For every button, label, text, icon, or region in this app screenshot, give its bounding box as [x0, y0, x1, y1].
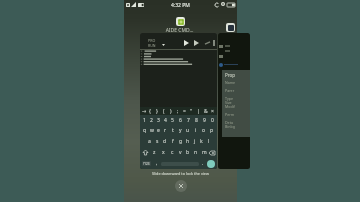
staticText: 2	[150, 117, 153, 124]
staticText: ×	[211, 108, 214, 115]
button[interactable]: q	[141, 125, 148, 136]
staticText: ;	[177, 108, 179, 115]
button[interactable]: Enter	[207, 160, 215, 168]
button[interactable]: Share	[205, 41, 210, 45]
button[interactable]: 5	[169, 115, 176, 125]
button[interactable]: 2	[148, 115, 155, 125]
button[interactable]: n	[192, 147, 200, 158]
button[interactable]: d	[161, 136, 169, 147]
button[interactable]: Close recents	[175, 180, 187, 192]
staticText: Perm	[225, 112, 235, 117]
button[interactable]: Run	[184, 40, 189, 46]
staticText: Binbg	[225, 124, 235, 129]
button[interactable]: PRO	[140, 33, 217, 169]
staticText: x	[162, 149, 165, 156]
staticText: )	[170, 108, 172, 115]
button[interactable]: &	[202, 107, 209, 115]
button[interactable]: Debug	[194, 40, 199, 46]
button[interactable]: y	[176, 125, 184, 136]
button[interactable]: r	[162, 125, 169, 136]
button[interactable]: 1	[141, 115, 148, 125]
button[interactable]: ×	[209, 107, 216, 115]
button[interactable]: {	[147, 107, 153, 115]
button[interactable]: h	[184, 136, 191, 147]
button[interactable]: 7	[184, 115, 192, 125]
button[interactable]: x	[159, 147, 168, 158]
button[interactable]: t	[169, 125, 176, 136]
button[interactable]: )	[167, 107, 174, 115]
staticText: Parer	[225, 88, 235, 93]
button[interactable]: →	[141, 107, 147, 115]
button[interactable]: 6	[176, 115, 184, 125]
staticText: e	[157, 127, 160, 134]
staticText: AIDE CMD…	[141, 27, 218, 34]
staticText: g	[179, 138, 183, 145]
button[interactable]: =	[181, 107, 188, 115]
staticText: Deta	[225, 120, 233, 125]
staticText: f	[172, 138, 174, 145]
button[interactable]: c	[168, 147, 176, 158]
staticText: o	[202, 127, 206, 134]
button[interactable]: Backspace	[208, 147, 216, 158]
button[interactable]: g	[177, 136, 184, 147]
button[interactable]: l	[205, 136, 212, 147]
button[interactable]: i	[192, 125, 200, 136]
staticText: s	[156, 138, 159, 145]
button[interactable]: k	[198, 136, 205, 147]
button[interactable]: Prop	[218, 33, 250, 169]
staticText: n	[194, 149, 198, 156]
staticText: |	[197, 108, 200, 115]
staticText: (	[163, 108, 165, 115]
button[interactable]: s	[153, 136, 161, 147]
button[interactable]: b	[184, 147, 192, 158]
staticText: Type	[225, 96, 233, 101]
button[interactable]: }	[153, 107, 160, 115]
button[interactable]: a	[145, 136, 153, 147]
staticText: h	[186, 138, 190, 145]
button[interactable]: 0	[208, 115, 216, 125]
staticText: c	[171, 149, 174, 156]
button[interactable]: |	[195, 107, 202, 115]
button[interactable]: Shift	[141, 147, 150, 158]
button[interactable]: ?123	[142, 161, 151, 166]
staticText: ,	[156, 160, 158, 167]
button[interactable]: (	[160, 107, 167, 115]
button[interactable]: 8	[192, 115, 200, 125]
staticText: data	[148, 48, 153, 51]
staticText: 0	[211, 117, 214, 124]
staticText: =	[183, 108, 186, 115]
staticText: RUN	[148, 43, 156, 48]
staticText: Prop	[225, 72, 235, 78]
button[interactable]: ;	[174, 107, 181, 115]
button[interactable]: u	[184, 125, 192, 136]
button[interactable]: f	[169, 136, 177, 147]
staticText: m	[202, 149, 207, 156]
staticText: l	[208, 138, 210, 145]
button[interactable]: z	[150, 147, 159, 158]
staticText: Name	[225, 80, 236, 85]
staticText: .	[202, 160, 204, 167]
button[interactable]: e	[155, 125, 162, 136]
staticText: 3	[157, 117, 160, 124]
staticText: Slide downward to lock the view	[152, 171, 209, 176]
button[interactable]: 4	[162, 115, 169, 125]
staticText: j	[194, 138, 196, 145]
staticText: 6	[179, 117, 182, 124]
button[interactable]: v	[176, 147, 184, 158]
button[interactable]: 9	[200, 115, 208, 125]
staticText: 8	[195, 117, 198, 124]
button[interactable]: w	[148, 125, 155, 136]
button[interactable]: m	[200, 147, 208, 158]
staticText: y	[179, 127, 182, 134]
staticText: PRO	[148, 38, 156, 43]
staticText: k	[200, 138, 203, 145]
button[interactable]: o	[200, 125, 208, 136]
staticText: w	[150, 127, 154, 134]
button[interactable]: "	[188, 107, 195, 115]
button[interactable]: 3	[155, 115, 162, 125]
button[interactable]: p	[208, 125, 216, 136]
staticText: "	[190, 108, 193, 115]
button[interactable]: j	[191, 136, 198, 147]
